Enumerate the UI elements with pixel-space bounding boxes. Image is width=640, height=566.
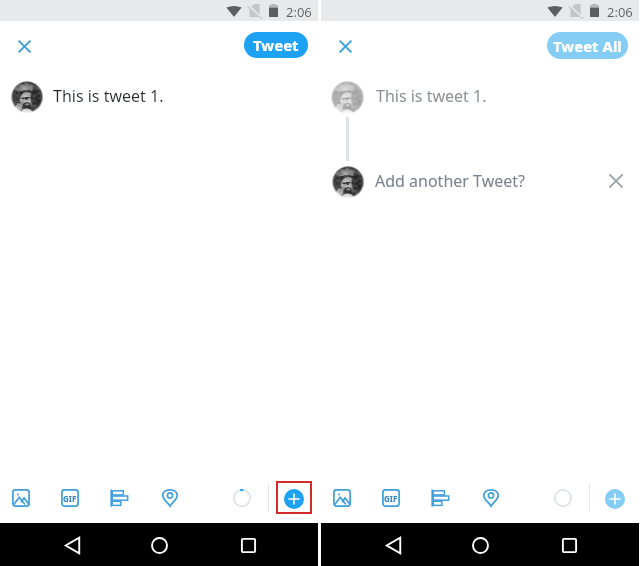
staticText: GIF — [63, 493, 77, 504]
button[interactable]: Remove tweet — [601, 166, 630, 195]
staticText: GIF — [384, 493, 398, 504]
button[interactable]: Add another tweet — [284, 489, 304, 509]
button[interactable]: Back — [379, 531, 407, 559]
button[interactable]: Close — [8, 30, 41, 63]
button[interactable]: Add location — [160, 488, 180, 508]
button[interactable]: Recent apps — [555, 531, 583, 559]
staticText: Tweet — [253, 35, 299, 55]
staticText: Add another Tweet? — [375, 170, 525, 192]
button[interactable]: Recent apps — [234, 531, 262, 559]
button[interactable]: Home — [145, 531, 173, 559]
button[interactable]: Add another tweet — [605, 489, 625, 509]
button[interactable]: Add photo — [332, 488, 352, 508]
staticText: This is tweet 1. — [376, 85, 487, 107]
button[interactable]: Close — [329, 30, 362, 63]
staticText: This is tweet 1. — [53, 85, 164, 107]
button[interactable]: Tweet — [244, 32, 308, 58]
button[interactable]: Add photo — [11, 488, 31, 508]
button[interactable]: Tweet All — [547, 32, 628, 59]
staticText: Tweet All — [553, 36, 622, 56]
button[interactable]: Add location — [481, 488, 501, 508]
staticText: 2:06 — [286, 3, 312, 21]
staticText: 2:06 — [607, 3, 633, 21]
button[interactable]: Add GIF — [381, 488, 401, 508]
button[interactable]: Add GIF — [60, 488, 80, 508]
button[interactable]: Add poll — [430, 488, 450, 508]
button[interactable]: Home — [466, 531, 494, 559]
button[interactable]: Add poll — [109, 488, 129, 508]
button[interactable]: Back — [58, 531, 86, 559]
